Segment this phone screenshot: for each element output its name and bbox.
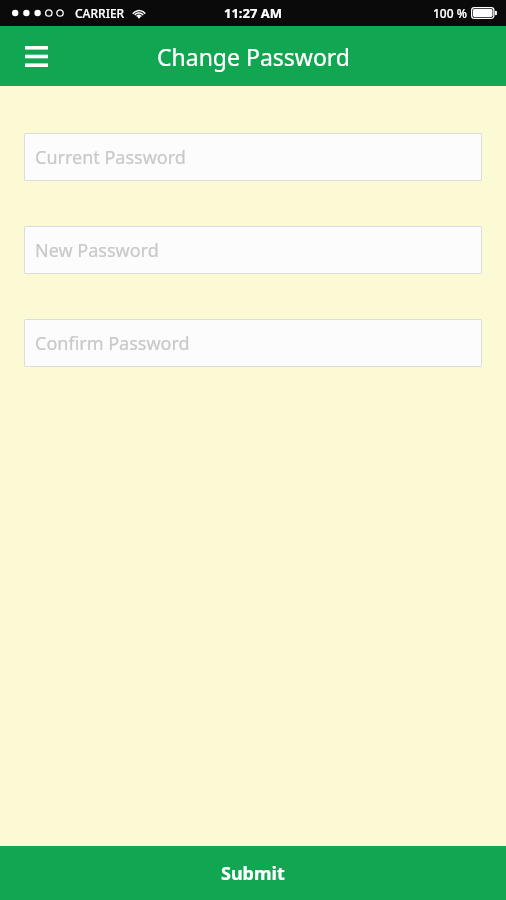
staticText: CARRIER bbox=[75, 5, 125, 21]
staticText: New Password bbox=[35, 238, 159, 263]
button[interactable]: Submit bbox=[0, 846, 506, 900]
button[interactable]: Open navigation menu bbox=[14, 34, 58, 78]
staticText: 100 % bbox=[433, 5, 467, 21]
staticText: Confirm Password bbox=[35, 331, 190, 356]
button[interactable]: Current Password bbox=[24, 133, 482, 181]
staticText: Current Password bbox=[35, 145, 186, 170]
staticText: 11:27 AM bbox=[224, 4, 283, 22]
staticText: Submit bbox=[221, 861, 285, 886]
button[interactable]: Confirm Password bbox=[24, 319, 482, 367]
button[interactable]: New Password bbox=[24, 226, 482, 274]
staticText: Change Password bbox=[157, 41, 350, 72]
